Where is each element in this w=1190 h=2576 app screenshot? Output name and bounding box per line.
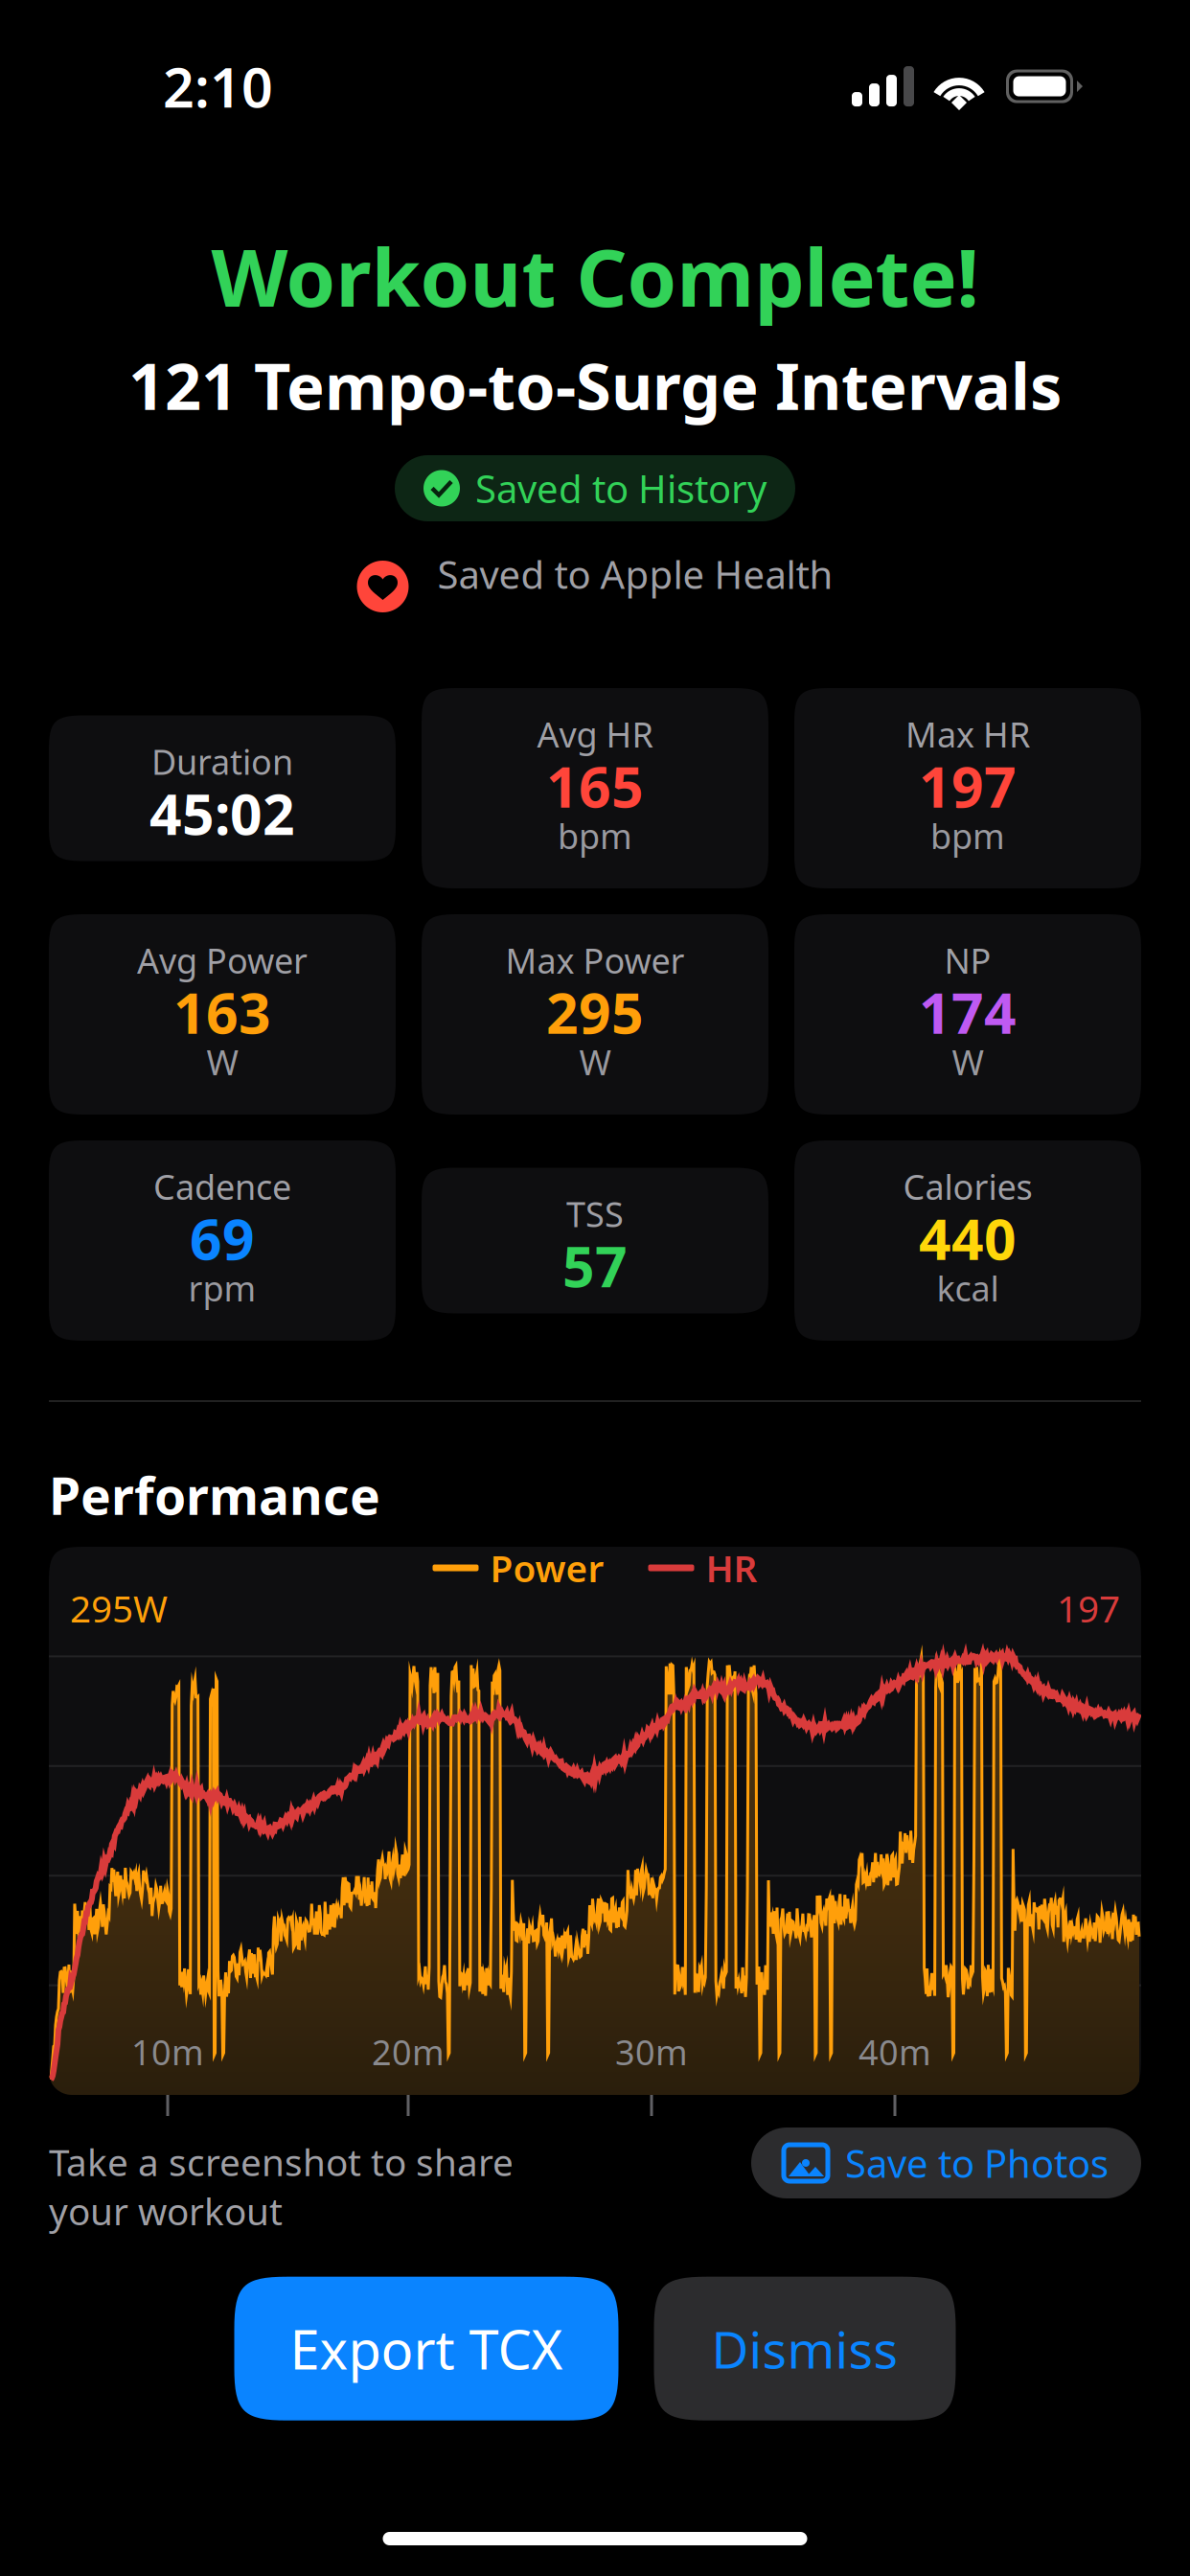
- staticText: 163: [173, 975, 271, 1049]
- button[interactable]: Cadence: [49, 1140, 396, 1341]
- button[interactable]: Max HR: [794, 688, 1141, 888]
- staticText: Avg Power: [137, 937, 308, 983]
- staticText: 20m: [372, 2029, 445, 2075]
- staticText: 295: [546, 975, 644, 1049]
- button[interactable]: Duration: [49, 715, 396, 861]
- button[interactable]: Save to Photos: [751, 2127, 1141, 2198]
- staticText: Dismiss: [711, 2315, 898, 2383]
- staticText: 69: [190, 1201, 255, 1275]
- button[interactable]: NP: [794, 914, 1141, 1115]
- staticText: 30m: [615, 2029, 688, 2075]
- staticText: bpm: [558, 813, 632, 859]
- staticText: 40m: [858, 2029, 931, 2075]
- button[interactable]: Max Power: [422, 914, 768, 1115]
- staticText: 295W: [70, 1583, 168, 1633]
- button[interactable]: Dismiss: [654, 2277, 956, 2420]
- staticText: 197: [1057, 1583, 1120, 1633]
- staticText: 440: [919, 1201, 1017, 1275]
- staticText: W: [952, 1039, 984, 1085]
- staticText: 10m: [131, 2029, 204, 2075]
- staticText: Cadence: [153, 1164, 291, 1209]
- staticText: Save to Photos: [845, 2137, 1109, 2188]
- staticText: TSS: [566, 1191, 624, 1237]
- staticText: W: [579, 1039, 611, 1085]
- staticText: W: [206, 1039, 238, 1085]
- staticText: Power: [490, 1543, 604, 1592]
- button[interactable]: Calories: [794, 1140, 1141, 1341]
- button[interactable]: Avg Power: [49, 914, 396, 1115]
- staticText: 121 Tempo-to-Surge Intervals: [128, 343, 1062, 428]
- staticText: Duration: [151, 738, 293, 784]
- staticText: Saved to Apple Health: [437, 549, 833, 599]
- button[interactable]: TSS: [422, 1168, 768, 1313]
- staticText: NP: [944, 937, 991, 983]
- staticText: rpm: [188, 1265, 256, 1311]
- staticText: 57: [562, 1228, 628, 1303]
- staticText: HR: [706, 1543, 757, 1592]
- button[interactable]: Saved to History: [395, 455, 795, 521]
- staticText: kcal: [937, 1265, 999, 1311]
- staticText: Performance: [49, 1461, 380, 1529]
- staticText: Max Power: [505, 937, 685, 983]
- staticText: bpm: [930, 813, 1005, 859]
- staticText: Calories: [903, 1164, 1032, 1209]
- staticText: Saved to History: [475, 463, 767, 514]
- button[interactable]: Export TCX: [234, 2277, 618, 2420]
- staticText: Workout Complete!: [211, 223, 979, 329]
- staticText: 197: [919, 748, 1017, 823]
- staticText: 45:02: [149, 776, 295, 850]
- staticText: 165: [546, 748, 644, 823]
- staticText: Export TCX: [290, 2313, 563, 2384]
- staticText: Take a screenshot to share your workout: [49, 2137, 514, 2236]
- staticText: 174: [919, 975, 1017, 1049]
- staticText: Avg HR: [537, 711, 653, 757]
- staticText: Max HR: [905, 711, 1030, 757]
- button[interactable]: Avg HR: [422, 688, 768, 888]
- staticText: 2:10: [163, 50, 273, 123]
